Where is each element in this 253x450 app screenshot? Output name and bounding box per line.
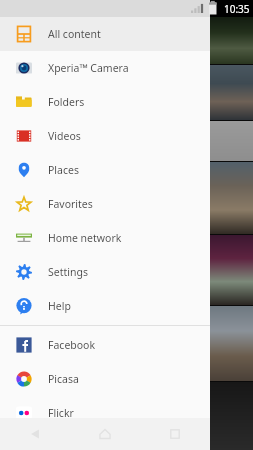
button[interactable]: Home network [0,221,210,255]
staticText: Facebook [48,338,96,352]
button[interactable]: Folders [0,85,210,119]
staticText: Picasa [48,372,79,386]
button[interactable]: Facebook [0,328,210,362]
staticText: Folders [48,95,85,109]
staticText: Help [48,299,71,313]
button[interactable]: Flickr [0,396,210,430]
button[interactable]: Videos [0,119,210,153]
staticText: Home network [48,231,122,245]
staticText: Xperia™ Camera [48,61,129,75]
button[interactable]: Picasa [0,362,210,396]
staticText: All content [48,27,101,41]
staticText: Videos [48,129,81,143]
button[interactable]: All content [0,17,210,51]
staticText: 10:35 [224,2,250,16]
button[interactable]: Xperia™ Camera [0,51,210,85]
button[interactable]: Settings [0,255,210,289]
button[interactable]: Favorites [0,187,210,221]
button[interactable]: Help [0,289,210,323]
staticText: Flickr [48,406,74,420]
button[interactable]: Places [0,153,210,187]
staticText: Settings [48,265,88,279]
staticText: Places [48,163,79,177]
staticText: Favorites [48,197,93,211]
